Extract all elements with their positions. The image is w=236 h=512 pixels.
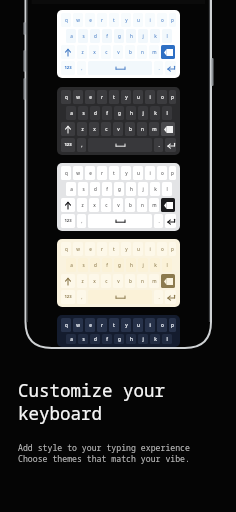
button[interactable]: z [77, 198, 87, 212]
button[interactable]: d [90, 29, 100, 43]
button[interactable]: x [89, 45, 99, 59]
button[interactable]: s [78, 106, 88, 120]
button[interactable]: h [126, 334, 136, 344]
button[interactable]: a [66, 334, 76, 344]
button[interactable]: b [125, 198, 135, 212]
button[interactable]: w [73, 318, 83, 332]
button[interactable]: u [133, 242, 143, 256]
button[interactable]: l [162, 106, 172, 120]
button[interactable]: y [121, 242, 131, 256]
button[interactable]: . [154, 61, 163, 75]
button[interactable]: 123 [61, 138, 75, 152]
button[interactable]: x [89, 274, 99, 288]
button[interactable]: d [90, 106, 100, 120]
button[interactable]: f [102, 29, 112, 43]
button[interactable]: Shift [61, 45, 75, 59]
button[interactable]: t [109, 90, 119, 104]
button[interactable]: Enter [165, 290, 176, 304]
button[interactable]: o [157, 242, 167, 256]
button[interactable]: r [97, 318, 107, 332]
button[interactable]: q [57, 163, 180, 231]
button[interactable]: Shift [61, 198, 75, 212]
button[interactable]: k [150, 258, 160, 272]
button[interactable]: s [78, 182, 88, 196]
button[interactable]: n [137, 274, 147, 288]
button[interactable]: h [126, 106, 136, 120]
button[interactable]: z [77, 274, 87, 288]
button[interactable]: h [126, 258, 136, 272]
button[interactable]: Space [88, 61, 152, 75]
button[interactable]: d [90, 258, 100, 272]
button[interactable]: j [138, 29, 148, 43]
button[interactable]: b [125, 274, 135, 288]
button[interactable]: k [150, 106, 160, 120]
button[interactable]: f [102, 334, 112, 344]
button[interactable]: Enter [165, 61, 176, 75]
button[interactable]: w [73, 242, 83, 256]
button[interactable]: i [145, 90, 155, 104]
button[interactable]: Backspace [161, 274, 175, 288]
button[interactable]: c [101, 122, 111, 136]
button[interactable]: p [169, 13, 176, 27]
button[interactable]: j [138, 334, 148, 344]
button[interactable]: r [97, 13, 107, 27]
button[interactable]: q [57, 239, 180, 307]
button[interactable]: , [77, 61, 86, 75]
button[interactable]: p [169, 90, 176, 104]
button[interactable]: y [121, 90, 131, 104]
button[interactable]: c [101, 274, 111, 288]
button[interactable]: r [97, 166, 107, 180]
button[interactable]: s [78, 258, 88, 272]
button[interactable]: q [61, 90, 71, 104]
button[interactable]: . [154, 290, 163, 304]
button[interactable]: v [113, 122, 123, 136]
button[interactable]: Space [88, 138, 152, 152]
button[interactable]: , [77, 290, 86, 304]
button[interactable]: n [137, 122, 147, 136]
button[interactable]: u [133, 90, 143, 104]
button[interactable]: q [61, 242, 71, 256]
button[interactable]: o [157, 166, 167, 180]
button[interactable]: v [113, 198, 123, 212]
button[interactable]: e [85, 166, 95, 180]
button[interactable]: t [109, 318, 119, 332]
button[interactable]: j [138, 258, 148, 272]
button[interactable]: . [154, 214, 163, 228]
button[interactable]: l [162, 334, 172, 344]
button[interactable]: . [154, 138, 163, 152]
button[interactable]: , [77, 138, 86, 152]
button[interactable]: m [149, 45, 159, 59]
button[interactable]: f [102, 106, 112, 120]
button[interactable]: d [90, 334, 100, 344]
button[interactable]: q [57, 10, 180, 78]
button[interactable]: z [77, 122, 87, 136]
button[interactable]: e [85, 13, 95, 27]
button[interactable]: Backspace [161, 198, 175, 212]
button[interactable]: e [85, 318, 95, 332]
button[interactable]: i [145, 242, 155, 256]
button[interactable]: f [102, 182, 112, 196]
button[interactable]: Backspace [161, 45, 175, 59]
button[interactable]: b [125, 45, 135, 59]
button[interactable]: o [157, 13, 167, 27]
button[interactable]: p [169, 242, 176, 256]
button[interactable]: g [114, 106, 124, 120]
button[interactable]: l [162, 182, 172, 196]
button[interactable]: c [101, 198, 111, 212]
button[interactable]: Enter [165, 138, 176, 152]
button[interactable]: z [77, 45, 87, 59]
button[interactable]: u [133, 166, 143, 180]
button[interactable]: Shift [61, 122, 75, 136]
button[interactable]: m [149, 274, 159, 288]
button[interactable]: q [57, 87, 180, 155]
button[interactable]: x [89, 122, 99, 136]
button[interactable]: e [85, 90, 95, 104]
button[interactable]: x [89, 198, 99, 212]
button[interactable]: a [66, 258, 76, 272]
button[interactable]: w [73, 90, 83, 104]
button[interactable]: g [114, 334, 124, 344]
button[interactable]: Space [88, 214, 152, 228]
button[interactable]: q [61, 318, 71, 332]
button[interactable]: y [121, 318, 131, 332]
button[interactable]: d [90, 182, 100, 196]
